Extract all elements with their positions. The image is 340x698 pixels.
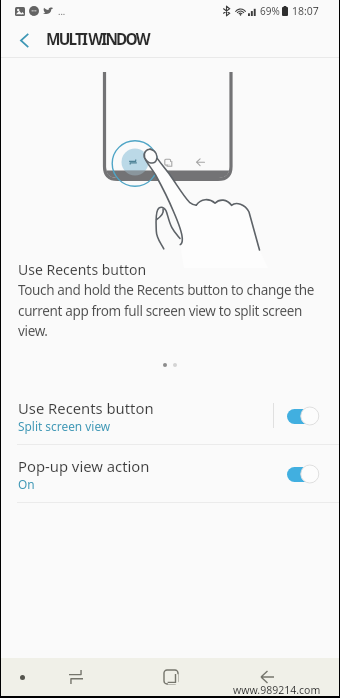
staticText: Touch and hold the Recents button to cha… — [18, 281, 325, 340]
staticText: MULTI WINDOW — [46, 29, 149, 50]
staticText: Split screen view — [18, 418, 111, 434]
staticText: ... — [58, 5, 66, 17]
button[interactable]: Recent apps — [61, 662, 91, 692]
staticText: 18:07 — [292, 4, 319, 18]
button[interactable]: Menu — [12, 667, 32, 687]
button[interactable]: Toggle switch, on — [287, 464, 319, 484]
button[interactable]: Pop-up view action — [1, 445, 339, 502]
staticText: On — [18, 476, 35, 492]
staticText: www.989214.com — [233, 683, 321, 696]
staticText: Pop-up view action — [18, 456, 150, 476]
staticText: 69% — [260, 4, 280, 18]
button[interactable]: Back — [252, 662, 282, 692]
staticText: Use Recents button — [18, 398, 154, 418]
button[interactable]: Navigate up — [8, 24, 40, 56]
button[interactable]: Home — [156, 662, 186, 692]
staticText: Use Recents button — [18, 260, 147, 279]
button[interactable]: Toggle switch, on — [287, 406, 319, 426]
button[interactable]: Use Recents button — [1, 387, 339, 444]
